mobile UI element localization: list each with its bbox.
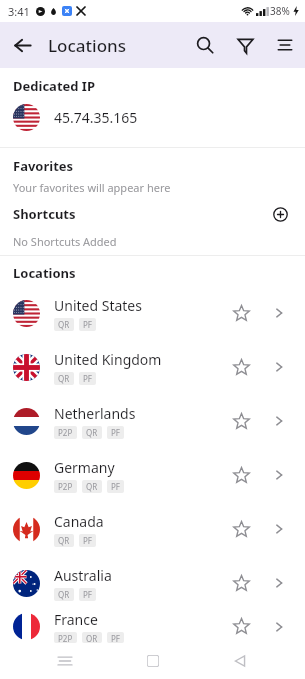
button[interactable]: Open United States — [266, 300, 292, 326]
staticText: No Shortcuts Added — [13, 234, 117, 249]
button[interactable]: Canada — [0, 502, 305, 556]
staticText: PF — [83, 535, 92, 546]
staticText: Dedicated IP — [13, 77, 96, 95]
staticText: PF — [83, 589, 92, 600]
staticText: QR — [86, 633, 98, 642]
button[interactable]: Back — [0, 23, 44, 67]
staticText: Netherlands — [54, 404, 136, 423]
button[interactable]: Open Germany — [266, 462, 292, 488]
staticText: QR — [58, 373, 70, 384]
button[interactable]: Open Netherlands — [266, 408, 292, 434]
button[interactable]: Filter — [225, 25, 265, 65]
staticText: P2P — [58, 427, 73, 438]
staticText: Your favorites will appear here — [13, 180, 171, 195]
staticText: Locations — [13, 264, 76, 282]
button[interactable]: Open Australia — [266, 570, 292, 596]
staticText: QR — [86, 481, 98, 492]
staticText: Locations — [48, 34, 126, 57]
staticText: Shortcuts — [13, 205, 76, 223]
button[interactable]: Open United Kingdom — [266, 354, 292, 380]
button[interactable]: Favorite Netherlands — [224, 404, 258, 438]
button[interactable]: United Kingdom — [0, 340, 305, 394]
staticText: PF — [111, 633, 120, 642]
button[interactable]: Favorite France — [224, 610, 258, 643]
staticText: 3:41 — [8, 4, 30, 19]
staticText: P2P — [58, 633, 73, 642]
staticText: Favorites — [13, 157, 74, 175]
button[interactable]: Add shortcut — [268, 202, 292, 226]
staticText: France — [54, 610, 98, 629]
staticText: PF — [83, 373, 92, 384]
button[interactable]: Favorite Australia — [224, 566, 258, 600]
staticText: United States — [54, 296, 142, 315]
staticText: Canada — [54, 512, 104, 531]
staticText: QR — [86, 427, 98, 438]
staticText: P2P — [58, 481, 73, 492]
button[interactable]: Germany — [0, 448, 305, 502]
button[interactable]: Home — [131, 643, 175, 679]
button[interactable]: Open Canada — [266, 516, 292, 542]
button[interactable]: United States — [0, 286, 305, 340]
button[interactable]: More options — [265, 25, 305, 65]
staticText: United Kingdom — [54, 350, 162, 369]
staticText: PF — [111, 481, 120, 492]
staticText: QR — [58, 535, 70, 546]
button[interactable]: 45.74.35.165 — [0, 97, 305, 137]
button[interactable]: Favorite Canada — [224, 512, 258, 546]
staticText: QR — [58, 589, 70, 600]
button[interactable]: Recent apps — [43, 643, 87, 679]
staticText: Australia — [54, 566, 112, 585]
staticText: Germany — [54, 458, 115, 477]
staticText: 38% — [270, 4, 290, 18]
button[interactable]: Open France — [266, 614, 292, 640]
button[interactable]: Search — [185, 25, 225, 65]
staticText: PF — [111, 427, 120, 438]
button[interactable]: Australia — [0, 556, 305, 610]
button[interactable]: Back — [218, 643, 262, 679]
button[interactable]: France — [0, 610, 305, 643]
button[interactable]: Favorite Germany — [224, 458, 258, 492]
button[interactable]: Netherlands — [0, 394, 305, 448]
button[interactable]: Favorite United States — [224, 296, 258, 330]
staticText: QR — [58, 319, 70, 330]
staticText: PF — [83, 319, 92, 330]
button[interactable]: Favorite United Kingdom — [224, 350, 258, 384]
staticText: 45.74.35.165 — [54, 108, 138, 127]
